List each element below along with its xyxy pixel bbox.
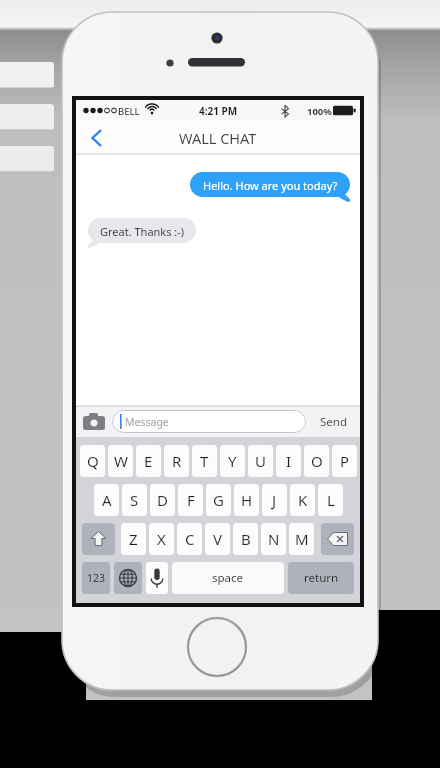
staticText: E <box>144 451 153 471</box>
button[interactable]: A <box>94 484 119 516</box>
button[interactable]: N <box>261 523 286 555</box>
button[interactable]: Shift <box>82 523 115 555</box>
staticText: Great. Thanks :-) <box>100 224 185 239</box>
staticText: R <box>172 451 182 471</box>
staticText: D <box>157 490 168 510</box>
button[interactable]: B <box>233 523 258 555</box>
staticText: X <box>157 529 166 549</box>
staticText: S <box>130 490 139 510</box>
button[interactable]: I <box>276 445 301 477</box>
staticText: M <box>295 529 309 549</box>
staticText: U <box>255 451 266 471</box>
button[interactable]: P <box>332 445 357 477</box>
staticText: Q <box>87 451 99 471</box>
staticText: A <box>102 490 112 510</box>
staticText: Send <box>320 414 347 430</box>
button[interactable]: T <box>192 445 217 477</box>
staticText: Message <box>125 415 169 429</box>
button[interactable]: F <box>178 484 203 516</box>
staticText: N <box>268 529 280 549</box>
staticText: Z <box>129 529 138 549</box>
button[interactable]: Backspace <box>321 523 354 555</box>
staticText: Y <box>228 451 237 471</box>
button[interactable]: C <box>177 523 202 555</box>
button[interactable]: 123 <box>82 562 110 594</box>
staticText: 4:21 PM <box>199 104 238 118</box>
staticText: return <box>304 570 339 586</box>
button[interactable]: Dictate <box>146 562 168 594</box>
button[interactable]: H <box>234 484 259 516</box>
staticText: B <box>241 529 251 549</box>
button[interactable]: Camera <box>81 410 107 433</box>
staticText: F <box>187 490 195 510</box>
button[interactable]: R <box>164 445 189 477</box>
staticText: Hello. How are you today? <box>203 178 338 193</box>
button[interactable]: G <box>206 484 231 516</box>
staticText: space <box>212 570 244 586</box>
staticText: J <box>272 490 277 510</box>
staticText: 100% <box>307 105 332 118</box>
button[interactable]: S <box>122 484 147 516</box>
button[interactable]: E <box>136 445 161 477</box>
button[interactable]: U <box>248 445 273 477</box>
staticText: WALL CHAT <box>179 128 257 148</box>
button[interactable]: Z <box>121 523 146 555</box>
staticText: 123 <box>87 571 106 585</box>
button[interactable]: Great. Thanks :-) <box>88 218 196 248</box>
staticText: C <box>185 529 195 549</box>
staticText: T <box>200 451 209 471</box>
button[interactable]: return <box>288 562 354 594</box>
button[interactable]: O <box>304 445 329 477</box>
button[interactable]: X <box>149 523 174 555</box>
button[interactable]: Send <box>310 406 356 437</box>
button[interactable]: K <box>290 484 315 516</box>
staticText: K <box>298 490 308 510</box>
button[interactable]: M <box>289 523 314 555</box>
staticText: G <box>213 490 224 510</box>
staticText: L <box>327 490 335 510</box>
button[interactable]: J <box>262 484 287 516</box>
button[interactable]: W <box>108 445 133 477</box>
staticText: I <box>286 451 292 471</box>
staticText: W <box>114 451 128 471</box>
staticText: P <box>340 451 350 471</box>
button[interactable]: Message <box>112 410 306 433</box>
button[interactable]: Y <box>220 445 245 477</box>
staticText: O <box>311 451 323 471</box>
button[interactable]: Back <box>76 121 120 155</box>
button[interactable]: Q <box>80 445 105 477</box>
button[interactable]: V <box>205 523 230 555</box>
button[interactable]: Hello. How are you today? <box>190 172 350 202</box>
button[interactable]: space <box>172 562 284 594</box>
staticText: V <box>213 529 223 549</box>
button[interactable]: Change keyboard <box>114 562 142 594</box>
button[interactable]: D <box>150 484 175 516</box>
staticText: H <box>241 490 253 510</box>
button[interactable]: L <box>318 484 343 516</box>
staticText: BELL <box>118 105 140 118</box>
